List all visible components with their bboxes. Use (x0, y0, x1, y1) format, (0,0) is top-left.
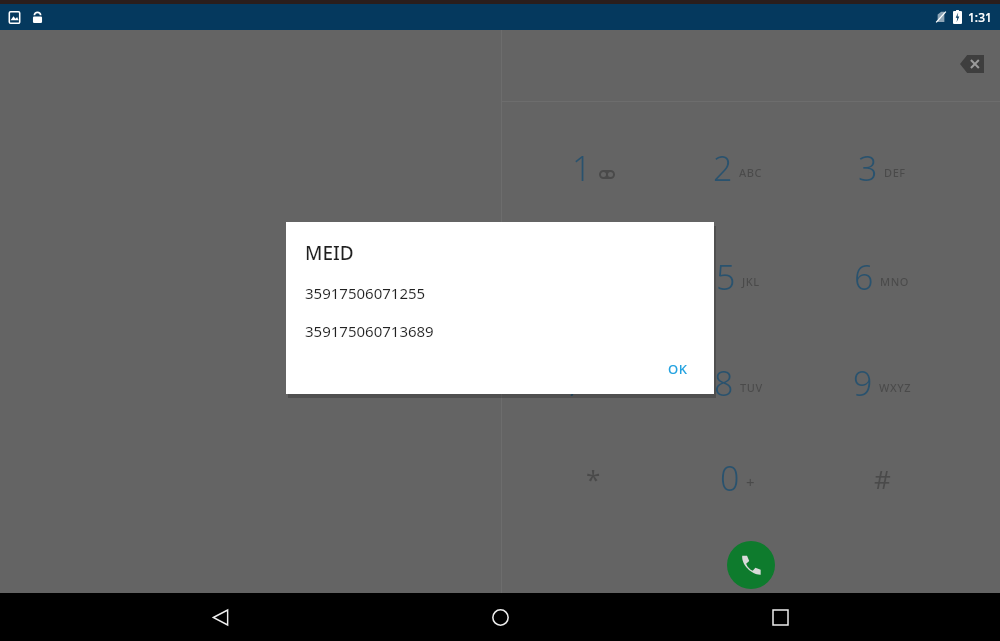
staticText: 2 (713, 145, 733, 191)
button[interactable]: 0 (668, 428, 808, 528)
button[interactable]: 8 (668, 333, 808, 433)
staticText: MNO (880, 274, 910, 289)
button[interactable]: 9 (812, 333, 952, 433)
staticText: DEF (884, 165, 906, 180)
staticText: 1:31 (968, 9, 992, 25)
staticText: 1 (572, 145, 592, 191)
staticText: PQRS (591, 380, 622, 395)
button[interactable]: OK (654, 352, 702, 386)
staticText: OK (668, 360, 688, 378)
button[interactable]: Call (727, 541, 775, 589)
staticText: 35917506071255 (305, 283, 426, 303)
staticText: 9 (853, 360, 873, 406)
button[interactable]: 3 (812, 118, 952, 218)
button[interactable]: Home (440, 593, 560, 641)
button[interactable]: 1 (523, 118, 663, 218)
button[interactable]: Backspace (952, 44, 992, 84)
staticText: 8 (714, 360, 734, 406)
button[interactable]: Back (160, 593, 280, 641)
staticText: + (746, 472, 756, 492)
button[interactable]: 5 (668, 227, 808, 327)
staticText: JKL (742, 274, 760, 289)
button[interactable]: 2 (668, 118, 808, 218)
staticText: 359175060713689 (305, 321, 434, 341)
staticText: ABC (739, 165, 763, 180)
staticText: * (586, 461, 601, 496)
staticText: 7 (565, 360, 585, 406)
staticText: 0 (720, 455, 740, 501)
staticText: WXYZ (879, 380, 912, 395)
button[interactable]: 6 (812, 227, 952, 327)
button[interactable]: Recent apps (720, 593, 840, 641)
button[interactable]: 7 (523, 333, 663, 433)
staticText: 6 (854, 254, 874, 300)
staticText: # (874, 461, 891, 496)
staticText: 5 (716, 254, 736, 300)
staticText: MEID (305, 240, 354, 266)
staticText: TUV (740, 380, 763, 395)
staticText: 3 (858, 145, 878, 191)
